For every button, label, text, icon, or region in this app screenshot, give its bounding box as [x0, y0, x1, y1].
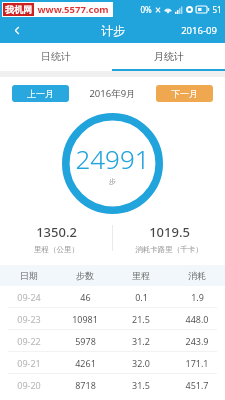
button[interactable]: 日统计 [0, 43, 112, 69]
button[interactable]: 上一月 [12, 85, 69, 102]
staticText: 10981 [72, 313, 98, 325]
staticText: 32.0 [132, 357, 150, 369]
button[interactable]: 09-23 [0, 308, 225, 329]
button[interactable]: 月统计 [112, 43, 225, 69]
staticText: 计步 [101, 23, 125, 38]
staticText: 下一月 [171, 88, 198, 99]
staticText: 09-22 [17, 335, 41, 347]
staticText: 2016-09 [181, 24, 217, 37]
staticText: 09-24 [17, 291, 41, 303]
staticText: 上一月 [27, 88, 54, 99]
staticText: 月统计 [154, 50, 184, 63]
button[interactable]: 09-22 [0, 330, 225, 351]
staticText: 31.2 [132, 335, 150, 347]
button[interactable]: 2016-09 [173, 18, 225, 43]
staticText: 1019.5 [149, 223, 190, 241]
button[interactable]: Back [0, 18, 34, 43]
staticText: 21.5 [132, 313, 150, 325]
staticText: 日期 [20, 270, 38, 281]
staticText: 171.1 [185, 357, 209, 369]
staticText: 日统计 [41, 50, 71, 63]
staticText: 451.7 [185, 379, 209, 391]
staticText: 46 [80, 291, 91, 303]
staticText: 5978 [75, 335, 96, 347]
staticText: 里程（公里） [34, 245, 79, 254]
button[interactable]: 09-24 [0, 286, 225, 307]
staticText: 消耗 [188, 270, 206, 281]
staticText: 8718 [75, 379, 96, 391]
staticText: 消耗卡路里（千卡） [135, 245, 203, 254]
staticText: 1350.2 [36, 223, 77, 241]
staticText: 31.5 [132, 379, 150, 391]
staticText: 4261 [75, 357, 96, 369]
button[interactable]: 09-21 [0, 352, 225, 373]
staticText: 我机网 [5, 4, 32, 15]
staticText: 09-21 [17, 357, 41, 369]
staticText: 243.9 [185, 335, 209, 347]
staticText: www.5577.com [37, 3, 109, 16]
staticText: 24991 [75, 141, 150, 176]
staticText: 09-23 [17, 313, 41, 325]
staticText: 0.1 [135, 291, 148, 303]
staticText: 448.0 [185, 313, 209, 325]
staticText: 1.9 [191, 291, 204, 303]
staticText: 步数 [76, 270, 94, 281]
staticText: 里程 [132, 270, 150, 281]
button[interactable]: 09-20 [0, 374, 225, 395]
staticText: 2016年9月 [89, 87, 136, 100]
staticText: 09-20 [17, 379, 41, 391]
button[interactable]: 下一月 [156, 85, 213, 102]
staticText: 步 [109, 177, 116, 186]
staticText: 51 [212, 4, 222, 15]
staticText: 0% [140, 4, 152, 15]
